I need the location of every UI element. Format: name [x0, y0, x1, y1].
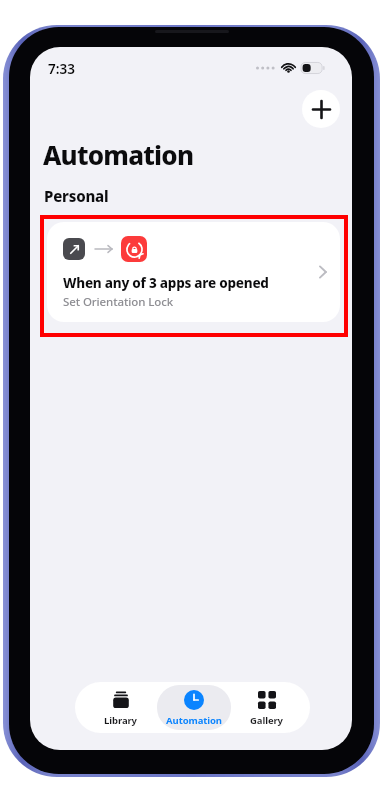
button[interactable]: Automation — [157, 685, 231, 730]
staticText: Set Orientation Lock — [63, 294, 174, 310]
button[interactable]: New automation — [302, 90, 340, 128]
staticText: Library — [104, 714, 137, 727]
staticText: Gallery — [250, 714, 283, 727]
staticText: Automation — [166, 714, 222, 727]
staticText: When any of 3 apps are opened — [63, 274, 269, 292]
staticText: 7:33 — [48, 60, 75, 78]
staticText: Automation — [43, 137, 194, 172]
button[interactable]: When any of 3 apps are opened — [47, 222, 340, 322]
staticText: Personal — [44, 186, 109, 206]
button[interactable]: Gallery — [231, 685, 302, 730]
button[interactable]: Library — [83, 685, 157, 730]
